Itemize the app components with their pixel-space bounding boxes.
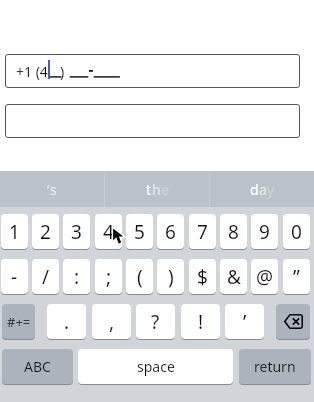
staticText: #+= [7, 313, 31, 331]
button[interactable]: , [92, 304, 131, 339]
staticText: 0 [291, 219, 302, 245]
staticText: y [267, 180, 275, 199]
button[interactable]: / [32, 259, 59, 294]
button[interactable]: t [105, 171, 209, 207]
staticText: & [227, 264, 241, 290]
button[interactable]: 6 [157, 214, 184, 249]
button[interactable]: d [210, 171, 314, 207]
button[interactable]: ! [181, 304, 220, 339]
staticText: h [152, 180, 161, 199]
button[interactable]: : [63, 259, 90, 294]
button[interactable]: ” [283, 259, 310, 294]
staticText: ’ [47, 180, 50, 199]
staticText: ” [293, 264, 300, 290]
staticText: space [137, 357, 175, 376]
staticText: t [146, 180, 152, 199]
button[interactable]: ) [157, 259, 184, 294]
button[interactable]: ABC [2, 349, 73, 384]
staticText: 6 [165, 219, 176, 245]
button[interactable]: return [239, 349, 311, 384]
button[interactable]: 9 [251, 214, 278, 249]
button[interactable]: @ [251, 259, 278, 294]
staticText: +1 (4 [16, 62, 48, 81]
staticText: d [250, 180, 259, 199]
button[interactable]: Backspace [276, 304, 310, 339]
button[interactable]: ? [136, 304, 175, 339]
button[interactable]: ’ [225, 304, 264, 339]
button[interactable]: . [47, 304, 86, 339]
button[interactable]: 3 [63, 214, 90, 249]
button[interactable]: $ [189, 259, 216, 294]
button[interactable]: 7 [189, 214, 216, 249]
button[interactable]: 5 [126, 214, 153, 249]
staticText: $ [197, 264, 208, 290]
staticText: 3 [71, 219, 82, 245]
staticText: 8 [228, 219, 239, 245]
button[interactable]: 8 [220, 214, 247, 249]
staticText: ! [198, 309, 204, 335]
staticText: . [64, 309, 70, 335]
staticText: e [161, 180, 169, 199]
staticText: return [254, 357, 296, 376]
staticText: ABC [24, 357, 51, 376]
staticText: 1 [9, 219, 20, 245]
staticText: a [259, 180, 267, 199]
staticText: ; [106, 264, 112, 290]
staticText: : [74, 264, 80, 290]
button[interactable]: ( [126, 259, 153, 294]
button[interactable]: #+= [2, 304, 35, 339]
button[interactable]: 1 [1, 214, 28, 249]
staticText: 4 [103, 219, 114, 245]
button[interactable]: space [78, 349, 233, 384]
staticText: ’ [243, 309, 247, 335]
button[interactable]: 4 [95, 214, 122, 249]
staticText: ? [151, 309, 160, 335]
staticText: - [11, 264, 18, 290]
staticText: ( [137, 264, 143, 290]
button[interactable]: 0 [283, 214, 310, 249]
button[interactable]: ; [95, 259, 122, 294]
button[interactable]: +1 (4 [5, 54, 300, 88]
button[interactable]: - [1, 259, 28, 294]
staticText: 9 [259, 219, 270, 245]
staticText: ) [168, 264, 174, 290]
staticText: 7 [197, 219, 208, 245]
staticText: 5 [134, 219, 145, 245]
staticText: / [42, 264, 50, 290]
button[interactable]: 2 [32, 214, 59, 249]
staticText: , [109, 309, 115, 335]
staticText: @ [256, 264, 274, 290]
staticText: s [50, 180, 57, 199]
staticText: ) [60, 62, 65, 81]
button[interactable]: & [220, 259, 247, 294]
button[interactable]: ’ [0, 171, 104, 207]
button[interactable] [5, 104, 300, 138]
staticText: 2 [40, 219, 51, 245]
